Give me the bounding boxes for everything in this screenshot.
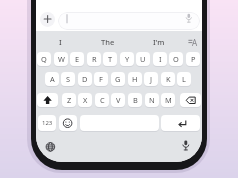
staticText: T <box>108 54 113 64</box>
staticText: A <box>50 74 55 84</box>
staticText: F <box>99 74 103 84</box>
staticText: Q <box>41 54 47 64</box>
button[interactable]: F <box>94 72 108 86</box>
button[interactable]: I <box>40 36 80 48</box>
button[interactable] <box>58 12 200 30</box>
staticText: E <box>75 54 80 64</box>
staticText: D <box>82 74 88 84</box>
button[interactable]: E <box>70 52 84 66</box>
button[interactable] <box>37 93 58 107</box>
button[interactable] <box>180 93 201 107</box>
button[interactable]: Y <box>120 52 134 66</box>
staticText: U <box>140 54 146 64</box>
staticText: The <box>101 37 115 47</box>
staticText: I <box>59 37 62 47</box>
staticText: H <box>132 74 138 84</box>
button[interactable] <box>43 139 58 154</box>
staticText: A <box>192 37 198 48</box>
staticText: G <box>115 74 121 84</box>
staticText: Z <box>67 95 72 105</box>
staticText: X <box>83 95 88 105</box>
button[interactable]: B <box>128 93 142 107</box>
button[interactable]: I'm <box>139 36 179 48</box>
button[interactable]: A <box>45 72 59 86</box>
button[interactable]: Z <box>62 93 76 107</box>
staticText: V <box>116 95 121 105</box>
staticText: M <box>165 95 172 105</box>
staticText: I <box>159 54 162 64</box>
button[interactable] <box>178 138 193 153</box>
staticText: B <box>133 95 138 105</box>
button[interactable]: V <box>111 93 125 107</box>
button[interactable]: S <box>61 72 75 86</box>
staticText: P <box>191 54 196 64</box>
button[interactable]: X <box>78 93 92 107</box>
button[interactable]: K <box>161 72 175 86</box>
staticText: Y <box>125 54 130 64</box>
button[interactable]: G <box>111 72 125 86</box>
staticText: C <box>100 95 105 105</box>
button[interactable]: The <box>88 36 128 48</box>
staticText: 123 <box>42 119 53 127</box>
button[interactable]: 123 <box>38 115 56 131</box>
button[interactable]: I <box>153 52 167 66</box>
staticText: W <box>58 54 65 64</box>
button[interactable]: N <box>145 93 159 107</box>
staticText: R <box>92 54 97 64</box>
staticText: I'm <box>153 37 165 47</box>
button[interactable]: O <box>169 52 183 66</box>
button[interactable]: D <box>78 72 92 86</box>
button[interactable]: Q <box>37 52 51 66</box>
staticText: K <box>166 74 171 84</box>
button[interactable]: J <box>144 72 158 86</box>
button[interactable] <box>59 115 77 131</box>
staticText: O <box>173 54 179 64</box>
button[interactable] <box>161 115 200 131</box>
button[interactable]: R <box>87 52 101 66</box>
button[interactable]: W <box>54 52 68 66</box>
button[interactable]: H <box>128 72 142 86</box>
button[interactable]: P <box>186 52 200 66</box>
staticText: L <box>182 74 186 84</box>
button[interactable] <box>40 12 55 27</box>
button[interactable]: L <box>177 72 191 86</box>
button[interactable]: C <box>95 93 109 107</box>
button[interactable]: T <box>103 52 117 66</box>
button[interactable]: M <box>161 93 175 107</box>
button[interactable]: U <box>136 52 150 66</box>
staticText: J <box>150 74 153 84</box>
staticText: N <box>149 95 155 105</box>
staticText: S <box>66 74 71 84</box>
